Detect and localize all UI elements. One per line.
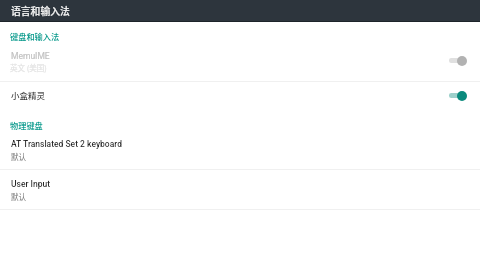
staticText: MemuIME [11, 51, 50, 61]
button[interactable]: 小盒精灵 开关 [446, 87, 472, 103]
staticText: 默认 [11, 191, 26, 202]
staticText: User Input [11, 179, 51, 189]
staticText: 英文 (美国) [10, 62, 47, 73]
staticText: 小盒精灵 [11, 89, 46, 101]
staticText: 物理键盘 [10, 119, 43, 130]
button[interactable]: 语言和输入法 [0, 0, 480, 22]
button[interactable]: 小盒精灵 [0, 82, 480, 109]
button[interactable]: AT Translated Set 2 keyboard [0, 134, 480, 169]
button[interactable]: MemuIME [0, 46, 480, 81]
staticText: 键盘和输入法 [10, 30, 60, 41]
staticText: AT Translated Set 2 keyboard [11, 139, 122, 149]
button[interactable]: MemuIME 开关 [446, 52, 472, 68]
staticText: 默认 [11, 151, 26, 162]
button[interactable]: User Input [0, 174, 480, 209]
staticText: 语言和输入法 [11, 4, 70, 18]
